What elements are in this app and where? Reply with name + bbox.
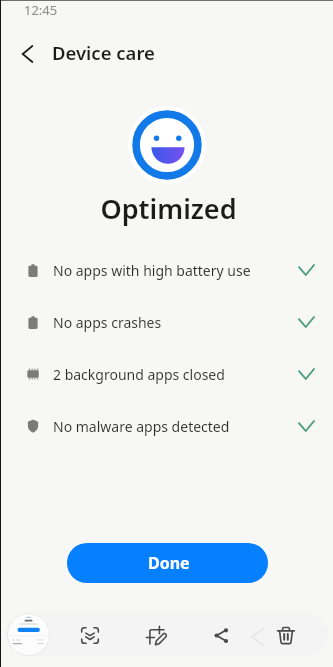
staticText: Device care [52,40,155,65]
button[interactable]: Scroll capture [68,612,112,657]
staticText: 2 background apps closed [53,365,225,384]
button[interactable]: Delete [264,612,308,657]
staticText: No apps crashes [53,313,162,332]
staticText: No apps with high battery use [53,261,251,280]
staticText: Done [148,552,190,574]
button[interactable]: No malware apps detected [0,400,333,452]
button[interactable]: No apps with high battery use [0,244,333,296]
staticText: 12:45 [24,1,58,19]
button[interactable]: Done [67,543,268,583]
button[interactable]: No apps crashes [0,296,333,348]
button[interactable]: Share [199,612,243,657]
staticText: No malware apps detected [53,417,230,436]
button[interactable]: Screenshot preview [7,613,50,656]
button[interactable]: Navigate up [5,31,49,75]
button[interactable]: 2 background apps closed [0,348,333,400]
button[interactable]: Crop and edit [134,612,178,657]
staticText: Optimized [2,190,333,227]
